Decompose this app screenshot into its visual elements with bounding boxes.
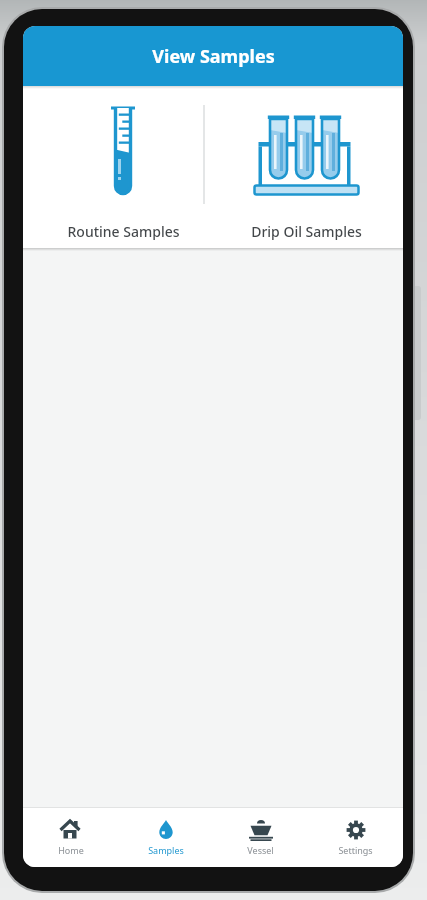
staticText: Home [58, 844, 84, 856]
button[interactable]: Samples [118, 808, 213, 867]
button[interactable]: Vessel [213, 808, 308, 867]
button[interactable]: Settings [308, 808, 403, 867]
button[interactable]: Home [23, 808, 118, 867]
staticText: View Samples [152, 44, 275, 69]
staticText: Vessel [247, 844, 274, 856]
staticText: Drip Oil Samples [251, 222, 362, 241]
button[interactable]: Routine Samples [51, 94, 196, 244]
button[interactable]: Drip Oil Samples [234, 94, 379, 244]
button[interactable]: View Samples [23, 26, 403, 86]
staticText: Routine Samples [67, 222, 180, 241]
staticText: Samples [148, 844, 184, 856]
staticText: Settings [338, 844, 373, 856]
